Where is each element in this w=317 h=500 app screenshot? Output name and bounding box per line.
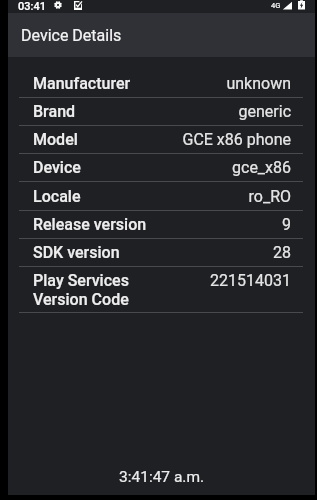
staticText: Model [33,130,78,149]
staticText: ro_RO [248,187,291,206]
staticText: 28 [273,243,291,262]
staticText: Device Details [21,26,122,45]
staticText: Device [33,158,81,177]
staticText: Manufacturer [33,74,131,93]
staticText: SDK version [33,243,120,262]
button[interactable]: Locale [8,182,315,210]
button[interactable]: Manufacturer [8,69,315,97]
button[interactable]: SDK version [8,239,315,266]
staticText: Brand [33,102,76,121]
staticText: generic [238,102,291,121]
button[interactable]: Release version [8,211,315,238]
staticText: GCE x86 phone [182,130,291,149]
staticText: 221514031 [210,271,291,290]
staticText: 3:41:47 a.m. [119,468,205,486]
staticText: 4G [271,1,281,10]
other: Settings [54,1,62,9]
button[interactable]: Play Services Version Code [8,267,315,312]
staticText: 9 [282,215,291,234]
staticText: Play Services Version Code [33,271,129,309]
button[interactable]: Brand [8,98,315,125]
staticText: 03:41 [18,0,46,13]
staticText: Locale [33,187,81,206]
button[interactable]: Device [8,154,315,181]
other: Notifications [74,1,82,10]
staticText: gce_x86 [232,158,291,177]
staticText: unknown [226,74,291,93]
staticText: Release version [33,215,147,234]
button[interactable]: Model [8,126,315,153]
